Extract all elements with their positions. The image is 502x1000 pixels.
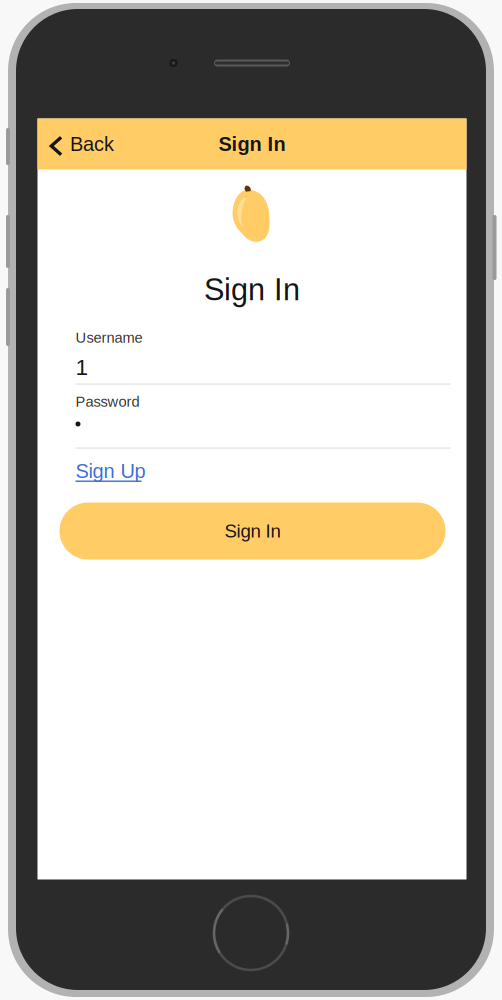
button[interactable]: Back — [37, 118, 128, 169]
staticText: Sign Up — [75, 460, 145, 482]
staticText: Sign In — [218, 133, 285, 155]
staticText: Password — [75, 393, 139, 410]
staticText: 1 — [75, 354, 88, 380]
button[interactable]: Sign Up — [75, 461, 165, 482]
button[interactable]: Sign In — [59, 502, 445, 559]
staticText: Back — [70, 133, 114, 155]
staticText: Sign In — [204, 272, 300, 307]
staticText: Username — [75, 329, 142, 346]
staticText: Sign In — [224, 521, 280, 541]
